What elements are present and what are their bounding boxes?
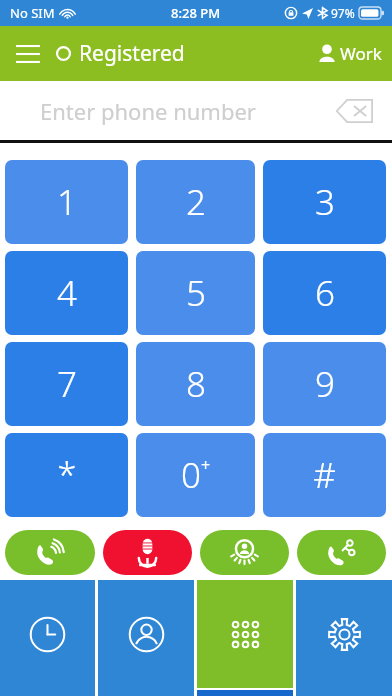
staticText: 3 (315, 178, 335, 226)
button[interactable]: Backspace (330, 93, 378, 129)
staticText: 1 (57, 178, 77, 226)
button[interactable]: # (263, 433, 386, 517)
button[interactable]: Page contact (200, 530, 289, 575)
button[interactable]: 7 (5, 342, 128, 426)
button[interactable]: 4 (5, 251, 128, 335)
button[interactable]: 2 (136, 160, 255, 244)
staticText: Registered (79, 39, 185, 68)
button[interactable]: Keypad (197, 580, 293, 688)
button[interactable]: Work (319, 42, 382, 65)
staticText: 8:28 PM (171, 4, 221, 22)
button[interactable]: 8 (136, 342, 255, 426)
button[interactable]: 1 (5, 160, 128, 244)
button[interactable]: Transfer call (297, 530, 386, 575)
staticText: 5 (186, 269, 206, 317)
button[interactable]: Menu (6, 32, 50, 76)
button[interactable]: 9 (263, 342, 386, 426)
button[interactable]: 0 (136, 433, 255, 517)
staticText: 97% (331, 5, 355, 21)
button[interactable]: * (5, 433, 128, 517)
staticText: Work (340, 42, 382, 65)
staticText: 7 (57, 360, 77, 408)
button[interactable]: Recents (0, 580, 95, 688)
staticText: 4 (57, 269, 77, 317)
staticText: 9 (315, 360, 335, 408)
staticText: Enter phone number (40, 96, 256, 126)
button[interactable]: 3 (263, 160, 386, 244)
staticText: 6 (315, 269, 335, 317)
staticText: * (57, 451, 77, 499)
staticText: No SIM (10, 4, 55, 22)
button[interactable]: Record (103, 530, 192, 575)
staticText: # (313, 451, 336, 499)
button[interactable]: 5 (136, 251, 255, 335)
button[interactable]: Settings (296, 580, 392, 688)
staticText: + (201, 454, 211, 476)
button[interactable]: Call (5, 530, 95, 575)
staticText: 0 (181, 451, 201, 499)
button[interactable]: Contacts (98, 580, 194, 688)
staticText: 8 (186, 360, 206, 408)
staticText: 2 (186, 178, 206, 226)
button[interactable]: 6 (263, 251, 386, 335)
